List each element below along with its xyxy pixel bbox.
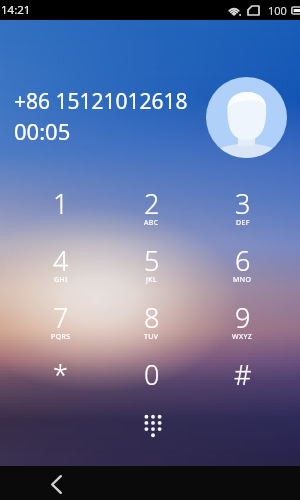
- button[interactable]: Back: [41, 469, 71, 499]
- staticText: *: [53, 356, 68, 393]
- button[interactable]: Hide dialpad: [134, 407, 172, 445]
- staticText: JKL: [146, 275, 158, 285]
- button[interactable]: 8: [106, 289, 197, 346]
- button[interactable]: 7: [15, 289, 106, 346]
- button[interactable]: 6: [197, 232, 288, 289]
- button[interactable]: 4: [15, 232, 106, 289]
- button[interactable]: #: [197, 346, 288, 403]
- button[interactable]: 5: [106, 232, 197, 289]
- staticText: 7: [53, 299, 69, 336]
- button[interactable]: 0: [106, 346, 197, 403]
- staticText: 14:21: [1, 2, 31, 18]
- staticText: 5: [144, 242, 160, 279]
- staticText: WXYZ: [232, 332, 253, 342]
- button[interactable]: *: [15, 346, 106, 403]
- staticText: +86 15121012618: [14, 87, 188, 116]
- staticText: TUV: [144, 332, 159, 342]
- staticText: 1: [53, 185, 69, 222]
- staticText: 0: [144, 356, 160, 393]
- button[interactable]: 3: [197, 175, 288, 232]
- staticText: 9: [235, 299, 251, 336]
- staticText: 6: [235, 242, 251, 279]
- staticText: 4: [53, 242, 69, 279]
- staticText: 00:05: [14, 116, 71, 146]
- button[interactable]: 1: [15, 175, 106, 232]
- button[interactable]: Contact photo: [206, 77, 287, 158]
- button[interactable]: 9: [197, 289, 288, 346]
- staticText: 3: [235, 185, 251, 222]
- button[interactable]: 2: [106, 175, 197, 232]
- staticText: MNO: [233, 275, 252, 285]
- staticText: GHI: [54, 275, 68, 285]
- staticText: 8: [144, 299, 160, 336]
- staticText: DEF: [236, 218, 250, 228]
- staticText: #: [234, 356, 252, 393]
- staticText: ABC: [144, 218, 159, 228]
- staticText: 100: [268, 3, 287, 18]
- staticText: PQRS: [51, 332, 71, 342]
- staticText: 2: [144, 185, 160, 222]
